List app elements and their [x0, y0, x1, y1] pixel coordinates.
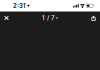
button[interactable]: Close	[0, 12, 12, 23]
button[interactable]: 1 / 7	[40, 12, 60, 23]
staticText: 1 / 7	[42, 14, 55, 22]
button[interactable]: Share	[87, 12, 99, 23]
staticText: 2:31	[13, 2, 26, 9]
